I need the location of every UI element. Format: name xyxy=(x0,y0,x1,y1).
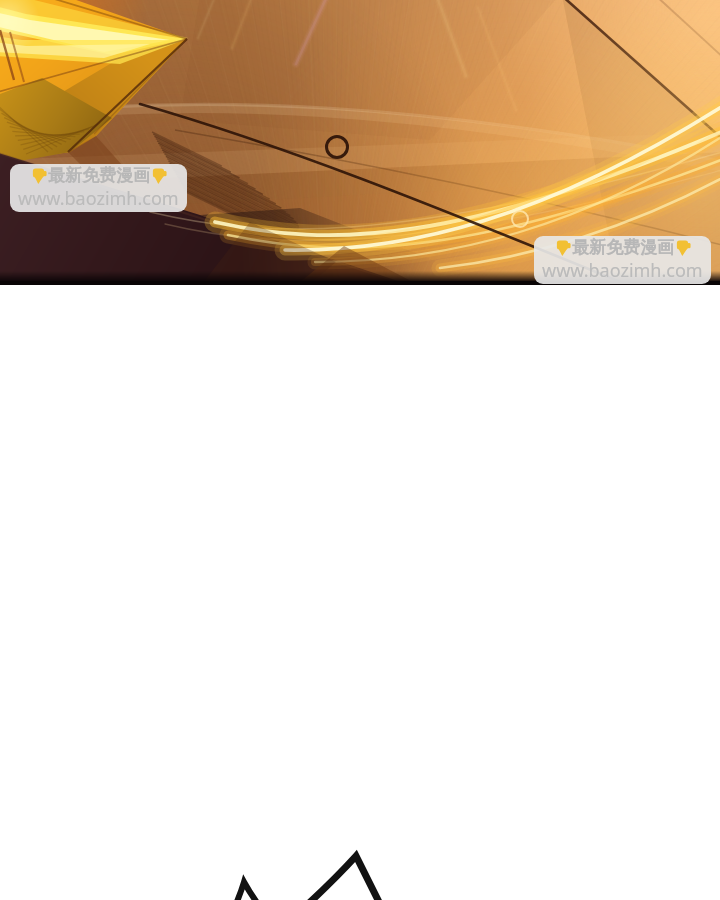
staticText: www.baozimh.com xyxy=(542,258,703,283)
staticText: www.baozimh.com xyxy=(18,186,179,211)
button[interactable]: 最新免费漫画 xyxy=(10,164,187,212)
staticText: 最新免费漫画 xyxy=(48,165,150,186)
button[interactable]: 最新免费漫画 xyxy=(534,236,711,284)
staticText: 最新免费漫画 xyxy=(572,237,674,258)
